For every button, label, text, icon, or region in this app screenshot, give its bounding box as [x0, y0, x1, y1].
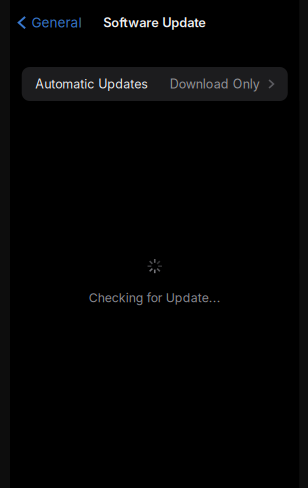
staticText: Automatic Updates	[35, 76, 148, 92]
staticText: Download Only	[170, 76, 260, 92]
staticText: General	[31, 14, 81, 31]
staticText: Software Update	[103, 15, 206, 30]
staticText: Checking for Update...	[89, 290, 221, 305]
button[interactable]: Automatic Updates	[22, 67, 288, 101]
button[interactable]: General	[10, 9, 87, 36]
